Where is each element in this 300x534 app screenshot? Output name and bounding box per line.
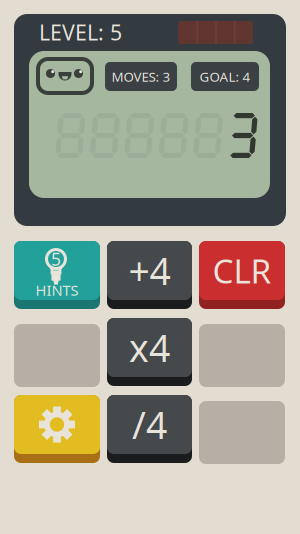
button[interactable]: Empty slot: [199, 324, 285, 387]
staticText: 5: [51, 247, 61, 270]
button[interactable]: Hints: [14, 241, 100, 309]
staticText: HINTS: [35, 280, 78, 300]
button[interactable]: Empty slot: [14, 324, 100, 387]
staticText: CLR: [212, 248, 271, 293]
staticText: x4: [129, 323, 170, 372]
button[interactable]: Empty slot: [199, 401, 285, 464]
staticText: /4: [132, 400, 167, 449]
staticText: +4: [128, 246, 170, 295]
staticText: GOAL: 4: [199, 68, 250, 85]
staticText: LEVEL: 5: [39, 18, 122, 46]
button[interactable]: [107, 395, 192, 463]
button[interactable]: Settings: [14, 395, 100, 463]
button[interactable]: [107, 241, 192, 309]
button[interactable]: [107, 318, 192, 386]
button[interactable]: [199, 241, 285, 309]
staticText: MOVES: 3: [111, 68, 170, 85]
